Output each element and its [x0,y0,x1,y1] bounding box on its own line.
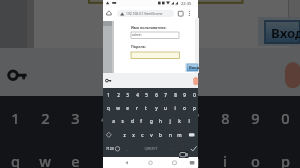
button[interactable]: w [30,148,60,168]
staticText: 7 [164,92,167,98]
button[interactable]: Recent apps [170,159,179,167]
staticText: w [39,151,51,168]
button[interactable]: a [108,117,118,125]
button[interactable]: i [170,104,180,112]
button[interactable]: Home [146,159,155,167]
button[interactable]: Back [122,159,131,167]
button[interactable]: Rotate screen [188,159,196,167]
button[interactable]: Enter [190,145,198,153]
button[interactable]: 1 [103,91,113,99]
staticText: e [71,151,80,168]
button[interactable]: x [129,131,138,139]
button[interactable]: 2 [113,91,123,99]
button[interactable]: 4 [132,91,142,99]
button[interactable]: z [120,131,129,139]
button[interactable]: 0 [270,105,300,130]
button[interactable]: v [147,131,156,139]
button[interactable]: l [184,117,194,125]
button[interactable]: ?123 [104,144,115,152]
staticText: 5 [145,92,148,98]
button[interactable]: y [151,104,161,112]
button[interactable] [179,151,189,158]
button[interactable]: 2 [30,105,60,130]
button[interactable]: 4 [90,105,120,130]
button[interactable]: Вход [187,64,198,71]
button[interactable]: Emoji [114,145,121,152]
button[interactable]: More options [187,10,192,17]
staticText: u [164,105,167,111]
button[interactable]: y [150,148,180,168]
button[interactable]: Home page [106,10,112,16]
button[interactable]: Open tabs [178,11,183,16]
button[interactable]: g [146,117,156,125]
button[interactable]: 3 [122,91,132,99]
staticText: q [11,151,20,168]
button[interactable] [89,0,242,3]
button[interactable]: u [180,148,210,168]
staticText: 8 [221,108,230,128]
button[interactable]: c [138,131,147,139]
button[interactable]: i [210,148,240,168]
staticText: j [169,118,171,124]
button[interactable]: m [175,131,184,139]
button[interactable]: 7 [160,91,170,99]
button[interactable]: 192.168.0.1/html/home [117,10,174,17]
button[interactable]: d [127,117,137,125]
button[interactable]: b [156,131,165,139]
button[interactable]: k [174,117,184,125]
button[interactable]: Вход [265,21,300,43]
button[interactable]: u [160,104,170,112]
button[interactable]: 8 [210,105,240,130]
button[interactable]: p [189,104,199,112]
staticText: p [281,151,290,168]
button[interactable]: j [165,117,175,125]
button[interactable]: w [113,104,123,112]
staticText: Пароль: [131,44,146,49]
staticText: . [172,146,174,151]
button[interactable]: s [117,117,127,125]
button[interactable]: Backspace [188,131,196,139]
button[interactable]: h [155,117,165,125]
staticText: v [150,132,153,138]
button[interactable]: 9 [179,91,189,99]
button[interactable]: r [132,104,142,112]
button[interactable]: 5 [141,91,151,99]
button[interactable]: admin [131,32,179,39]
button[interactable]: 6 [151,91,161,99]
staticText: 4 [136,92,139,98]
button[interactable]: o [240,148,270,168]
button[interactable]: 8 [170,91,180,99]
staticText: d [131,118,134,124]
staticText: admin [132,33,142,37]
button[interactable]: Saved passwords [7,67,29,84]
button[interactable]: f [136,117,146,125]
button[interactable]: , [124,144,130,152]
button[interactable]: t [141,104,151,112]
staticText: t [132,151,138,168]
staticText: s [121,118,124,124]
button[interactable]: 3 [60,105,90,130]
button[interactable]: q [103,104,113,112]
button[interactable] [131,52,180,59]
button[interactable]: 9 [240,105,270,130]
button[interactable]: n [166,131,175,139]
button[interactable]: Saved passwords [105,78,112,84]
button[interactable]: 1 [0,105,30,130]
button[interactable]: 5 [120,105,150,130]
button[interactable]: t [120,148,150,168]
button[interactable]: o [179,104,189,112]
button[interactable]: 0 [189,91,199,99]
staticText: b [159,132,162,138]
button[interactable]: p [270,148,300,168]
button[interactable]: 6 [150,105,180,130]
button[interactable]: Shift [105,131,113,139]
staticText: c [141,132,144,138]
button[interactable]: q [0,148,30,168]
button[interactable]: QWERTY [136,144,166,152]
staticText: 9 [251,108,260,128]
button[interactable]: 7 [180,105,210,130]
button[interactable]: e [60,148,90,168]
button[interactable]: e [122,104,132,112]
button[interactable]: r [90,148,120,168]
